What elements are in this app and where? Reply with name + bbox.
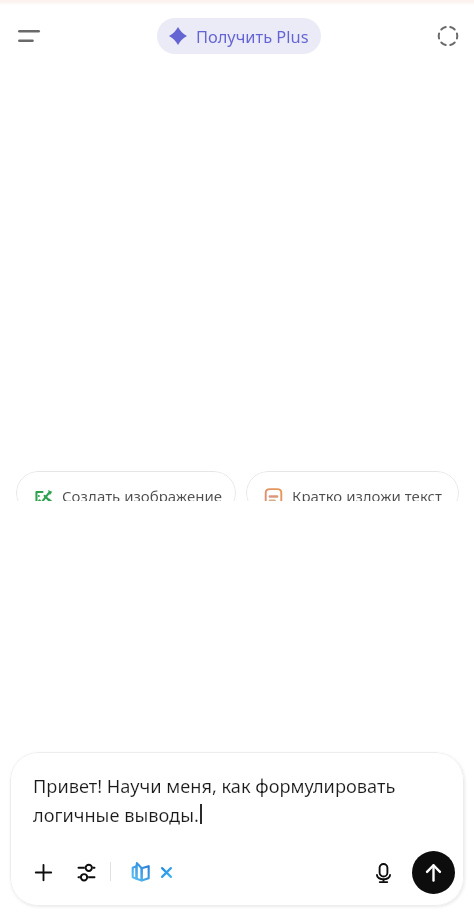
button[interactable]: Study mode xyxy=(123,854,157,888)
button[interactable]: Temporary chat xyxy=(424,12,472,60)
button[interactable]: Add xyxy=(26,855,60,889)
staticText: Получить Plus xyxy=(196,25,309,47)
button[interactable]: Получить Plus xyxy=(157,18,321,54)
button[interactable]: Кратко изложи текст xyxy=(246,471,459,501)
button[interactable]: Создать изображение xyxy=(16,471,236,501)
staticText: Создать изображение xyxy=(62,486,222,501)
button[interactable]: Tools xyxy=(69,855,103,889)
button[interactable]: Menu xyxy=(5,12,53,60)
button[interactable]: Send xyxy=(412,851,455,894)
button[interactable]: Voice input xyxy=(366,856,400,890)
button[interactable]: Remove study mode xyxy=(152,858,180,886)
staticText: Кратко изложи текст xyxy=(292,486,442,501)
staticText: Привет! Научи меня, как формулировать ло… xyxy=(33,774,396,828)
